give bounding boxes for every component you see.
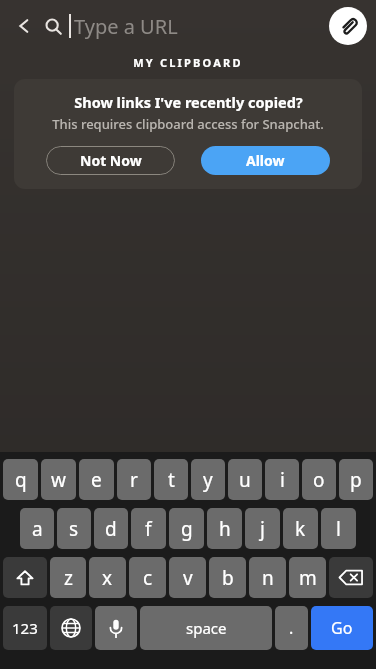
staticText: v	[183, 565, 193, 591]
button[interactable]: c	[129, 557, 166, 598]
button[interactable]: t	[154, 459, 188, 500]
button[interactable]: j	[245, 508, 280, 549]
button[interactable]: s	[57, 508, 91, 549]
button[interactable]: b	[209, 557, 246, 598]
button[interactable]: o	[302, 459, 336, 500]
staticText: Not Now	[80, 151, 142, 170]
staticText: MY CLIPBOARD	[0, 55, 376, 70]
button[interactable]: y	[191, 459, 225, 500]
staticText: a	[32, 516, 43, 542]
button[interactable]: p	[339, 459, 373, 500]
button[interactable]: h	[207, 508, 242, 549]
button[interactable]: x	[89, 557, 126, 598]
button[interactable]: Change keyboard language	[50, 606, 92, 650]
button[interactable]: .	[275, 606, 308, 650]
staticText: t	[168, 467, 175, 493]
button[interactable]: space	[140, 606, 272, 650]
button[interactable]: Not Now	[46, 146, 175, 175]
button[interactable]: n	[249, 557, 286, 598]
button[interactable]: q	[3, 459, 38, 500]
staticText: i	[280, 467, 285, 493]
button[interactable]: e	[79, 459, 114, 500]
staticText: r	[130, 467, 138, 493]
button[interactable]: Back	[8, 10, 40, 42]
staticText: k	[295, 516, 306, 542]
staticText: x	[102, 565, 113, 591]
button[interactable]: g	[169, 508, 204, 549]
button[interactable]: Attach	[329, 7, 367, 45]
staticText: l	[336, 516, 341, 542]
staticText: z	[64, 565, 73, 591]
button[interactable]: i	[265, 459, 299, 500]
staticText: e	[91, 467, 102, 493]
button[interactable]: r	[117, 459, 151, 500]
staticText: This requires clipboard access for Snapc…	[52, 115, 324, 133]
staticText: q	[15, 467, 27, 493]
staticText: d	[105, 516, 117, 542]
staticText: Allow	[246, 151, 285, 170]
staticText: g	[181, 516, 193, 542]
button[interactable]: l	[321, 508, 356, 549]
button[interactable]: d	[94, 508, 128, 549]
staticText: h	[219, 516, 231, 542]
staticText: 123	[12, 618, 38, 638]
button[interactable]: Shift	[3, 557, 47, 598]
staticText: Type a URL	[74, 13, 178, 40]
button[interactable]: k	[283, 508, 318, 549]
staticText: y	[203, 467, 213, 493]
button[interactable]: w	[41, 459, 76, 500]
staticText: .	[289, 617, 294, 639]
button[interactable]: Allow	[201, 146, 330, 175]
staticText: n	[262, 565, 274, 591]
button[interactable]: u	[228, 459, 262, 500]
staticText: o	[313, 467, 325, 493]
staticText: u	[239, 467, 251, 493]
staticText: b	[222, 565, 234, 591]
button[interactable]: Search	[38, 11, 68, 41]
staticText: s	[69, 516, 79, 542]
staticText: Go	[331, 617, 353, 639]
button[interactable]: f	[131, 508, 166, 549]
staticText: m	[299, 565, 317, 591]
staticText: j	[260, 516, 265, 542]
staticText: c	[143, 565, 153, 591]
button[interactable]: z	[50, 557, 86, 598]
button[interactable]: Go	[311, 606, 373, 650]
staticText: Show links I've recently copied?	[74, 92, 303, 112]
button[interactable]: v	[169, 557, 206, 598]
staticText: w	[51, 467, 66, 493]
button[interactable]: Backspace	[329, 557, 373, 598]
staticText: p	[350, 467, 362, 493]
staticText: f	[145, 516, 152, 542]
button[interactable]: Voice input	[95, 606, 137, 650]
button[interactable]: a	[20, 508, 54, 549]
staticText: space	[186, 618, 227, 638]
button[interactable]: m	[289, 557, 326, 598]
button[interactable]: 123	[3, 606, 47, 650]
